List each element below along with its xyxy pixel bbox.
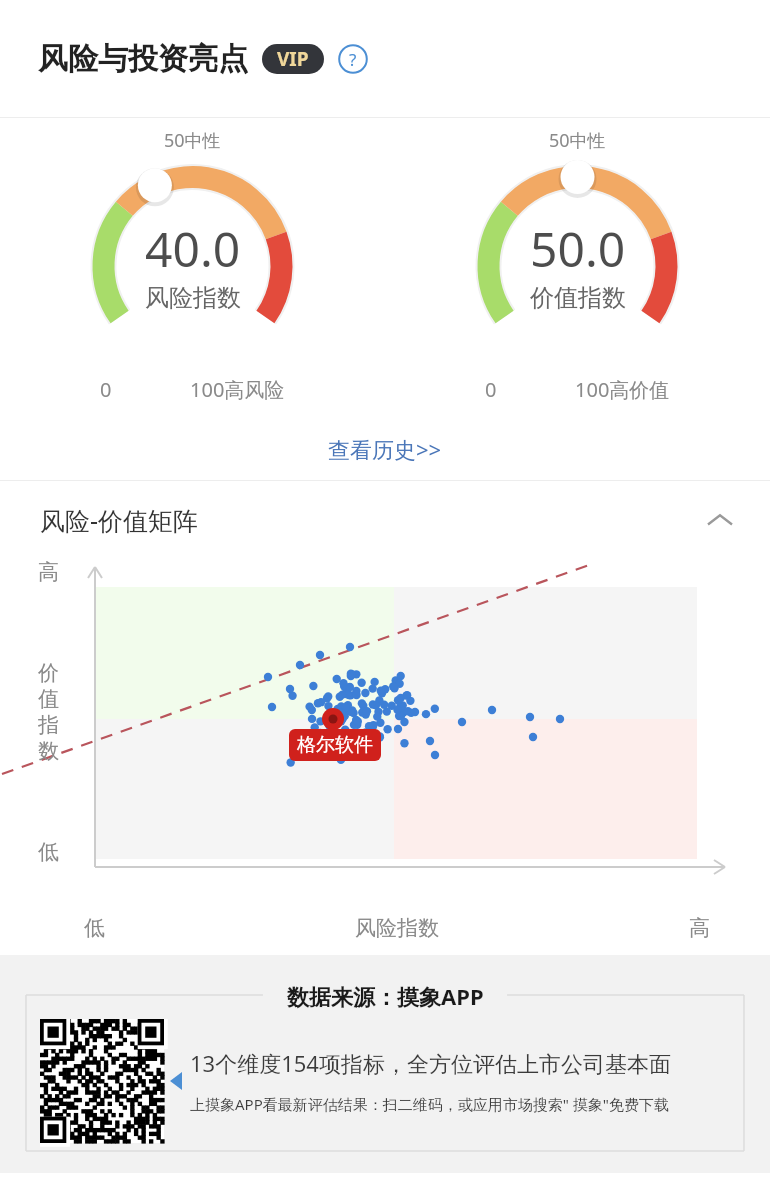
staticText: 上摸象APP看最新评估结果：扫二维码，或应用市场搜索" 摸象"免费下载 xyxy=(190,1094,669,1114)
staticText: 50中性 xyxy=(164,128,221,153)
staticText: 高 xyxy=(38,559,59,585)
button[interactable]: 查看历史>> xyxy=(312,426,458,472)
button[interactable]: 格尔软件 xyxy=(289,729,381,761)
staticText: 0 xyxy=(100,376,112,403)
staticText: 0 xyxy=(485,376,497,403)
staticText: VIP xyxy=(277,46,309,72)
staticText: 指 xyxy=(38,712,59,738)
staticText: 格尔软件 xyxy=(297,733,373,757)
staticText: 查看历史>> xyxy=(328,434,442,464)
button[interactable]: Help xyxy=(338,44,368,74)
staticText: 价 xyxy=(38,660,59,686)
button[interactable]: VIP xyxy=(262,44,324,74)
staticText: 低 xyxy=(38,839,59,865)
staticText: 100高价值 xyxy=(575,376,670,403)
staticText: 值 xyxy=(38,686,59,712)
staticText: 风险与投资亮点 xyxy=(38,40,248,78)
staticText: 风险指数 xyxy=(145,283,241,313)
staticText: 风险指数 xyxy=(355,915,439,941)
staticText: 数 xyxy=(38,738,59,764)
staticText: 100高风险 xyxy=(190,376,285,403)
staticText: 价值指数 xyxy=(530,283,626,313)
staticText: 低 xyxy=(84,915,105,941)
staticText: 13个维度154项指标，全方位评估上市公司基本面 xyxy=(190,1048,671,1078)
staticText: 50中性 xyxy=(549,128,606,153)
staticText: ? xyxy=(349,48,357,71)
staticText: 40.0 xyxy=(145,216,241,281)
staticText: 风险-价值矩阵 xyxy=(40,503,199,537)
staticText: 数据来源：摸象APP xyxy=(287,981,484,1011)
staticText: 50.0 xyxy=(530,216,626,281)
staticText: 高 xyxy=(689,915,710,941)
button[interactable]: 风险-价值矩阵 xyxy=(0,481,770,559)
